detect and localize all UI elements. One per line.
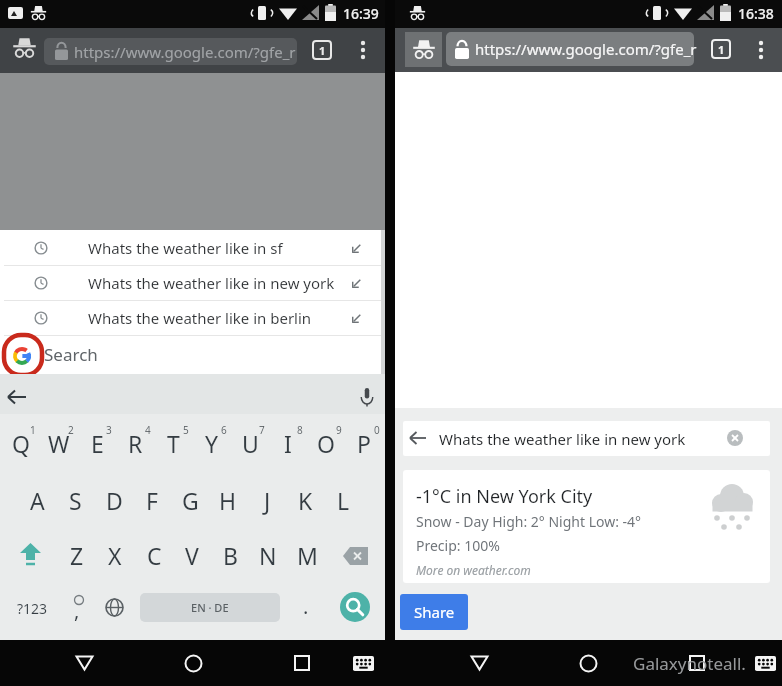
button[interactable] — [353, 656, 374, 671]
button[interactable]: 1 — [313, 41, 331, 59]
button[interactable] — [446, 32, 694, 66]
button[interactable] — [7, 389, 27, 405]
button[interactable]: H — [212, 484, 244, 517]
staticText: 16:38 — [738, 4, 774, 23]
staticText: O — [317, 428, 335, 459]
staticText: 6 — [221, 423, 227, 437]
button[interactable]: Z — [61, 539, 93, 572]
button[interactable]: N — [252, 539, 284, 572]
button[interactable]: F — [136, 484, 168, 517]
button[interactable] — [343, 547, 368, 565]
button[interactable]: EN · DE — [140, 593, 280, 622]
staticText: Share — [414, 602, 455, 622]
staticText: G — [182, 485, 199, 516]
staticText: ?123 — [17, 599, 48, 618]
staticText: F — [146, 485, 158, 516]
staticText: Precip: 100% — [416, 536, 500, 555]
staticText: Snow - Day High: 2° Night Low: -4° — [416, 512, 642, 531]
button[interactable]: D — [98, 484, 130, 517]
staticText: 0 — [374, 423, 380, 437]
staticText: . — [303, 593, 309, 620]
staticText: M — [297, 540, 318, 571]
staticText: 1 — [319, 43, 326, 58]
button[interactable]: U — [234, 427, 266, 460]
staticText: X — [108, 540, 122, 571]
staticText: 1 — [718, 42, 725, 57]
button[interactable]: A — [21, 484, 53, 517]
staticText: Search — [44, 343, 98, 366]
button[interactable] — [727, 430, 743, 446]
button[interactable] — [4, 300, 381, 335]
button[interactable]: K — [289, 484, 321, 517]
button[interactable] — [44, 38, 297, 65]
button[interactable]: ?123 — [12, 593, 52, 623]
button[interactable] — [18, 543, 43, 568]
button[interactable] — [75, 655, 94, 671]
button[interactable]: M — [291, 539, 323, 572]
button[interactable] — [12, 37, 37, 59]
staticText: 7 — [259, 423, 265, 437]
staticText: I — [284, 428, 292, 459]
staticText: https://www.google.com/?gfe_r — [74, 42, 296, 62]
button[interactable]: R — [119, 427, 151, 460]
button[interactable]: T — [157, 427, 189, 460]
button[interactable] — [340, 592, 370, 622]
button[interactable] — [4, 265, 381, 300]
staticText: W — [48, 428, 70, 459]
button[interactable] — [403, 421, 770, 456]
button[interactable]: S — [59, 484, 91, 517]
button[interactable] — [470, 655, 489, 671]
button[interactable] — [359, 388, 375, 407]
button[interactable] — [689, 655, 705, 671]
staticText: E — [91, 428, 104, 459]
staticText: EN · DE — [191, 600, 229, 615]
staticText: L — [337, 485, 350, 516]
button[interactable]: 1 — [712, 40, 730, 58]
button[interactable] — [4, 230, 381, 265]
button[interactable]: E — [81, 427, 113, 460]
button[interactable] — [294, 655, 310, 671]
button[interactable] — [579, 654, 598, 673]
staticText: -1°C in New York City — [416, 484, 593, 509]
button[interactable]: More on weather.com — [416, 561, 636, 579]
button[interactable]: Share — [400, 594, 468, 630]
button[interactable]: Y — [196, 427, 228, 460]
button[interactable]: W — [43, 427, 75, 460]
staticText: Whats the weather like in new york — [88, 273, 335, 293]
staticText: 2 — [68, 423, 74, 437]
button[interactable]: G — [174, 484, 206, 517]
button[interactable]: X — [99, 539, 131, 572]
staticText: T — [167, 428, 180, 459]
staticText: 5 — [183, 423, 189, 437]
staticText: P — [357, 428, 371, 459]
button[interactable]: Q — [5, 427, 37, 460]
button[interactable]: O — [310, 427, 342, 460]
staticText: Whats the weather like in new york — [439, 429, 686, 449]
button[interactable] — [105, 598, 124, 617]
button[interactable]: , — [62, 593, 92, 627]
button[interactable] — [755, 656, 776, 671]
staticText: K — [298, 485, 313, 516]
staticText: 3 — [106, 423, 112, 437]
button[interactable] — [4, 335, 381, 374]
button[interactable]: B — [214, 539, 246, 572]
button[interactable]: I — [272, 427, 304, 460]
staticText: D — [106, 485, 123, 516]
button[interactable]: J — [251, 484, 283, 517]
button[interactable]: V — [176, 539, 208, 572]
button[interactable]: P — [348, 427, 380, 460]
staticText: B — [223, 540, 238, 571]
staticText: 4 — [145, 423, 151, 437]
button[interactable]: . — [291, 589, 321, 623]
button[interactable] — [405, 32, 442, 67]
button[interactable] — [358, 40, 368, 60]
staticText: C — [147, 540, 162, 571]
button[interactable] — [756, 40, 766, 60]
staticText: H — [219, 485, 237, 516]
button[interactable] — [409, 430, 427, 446]
button[interactable]: L — [327, 484, 359, 517]
button[interactable]: C — [138, 539, 170, 572]
staticText: S — [69, 485, 82, 516]
button[interactable] — [403, 470, 770, 583]
button[interactable] — [184, 654, 203, 673]
